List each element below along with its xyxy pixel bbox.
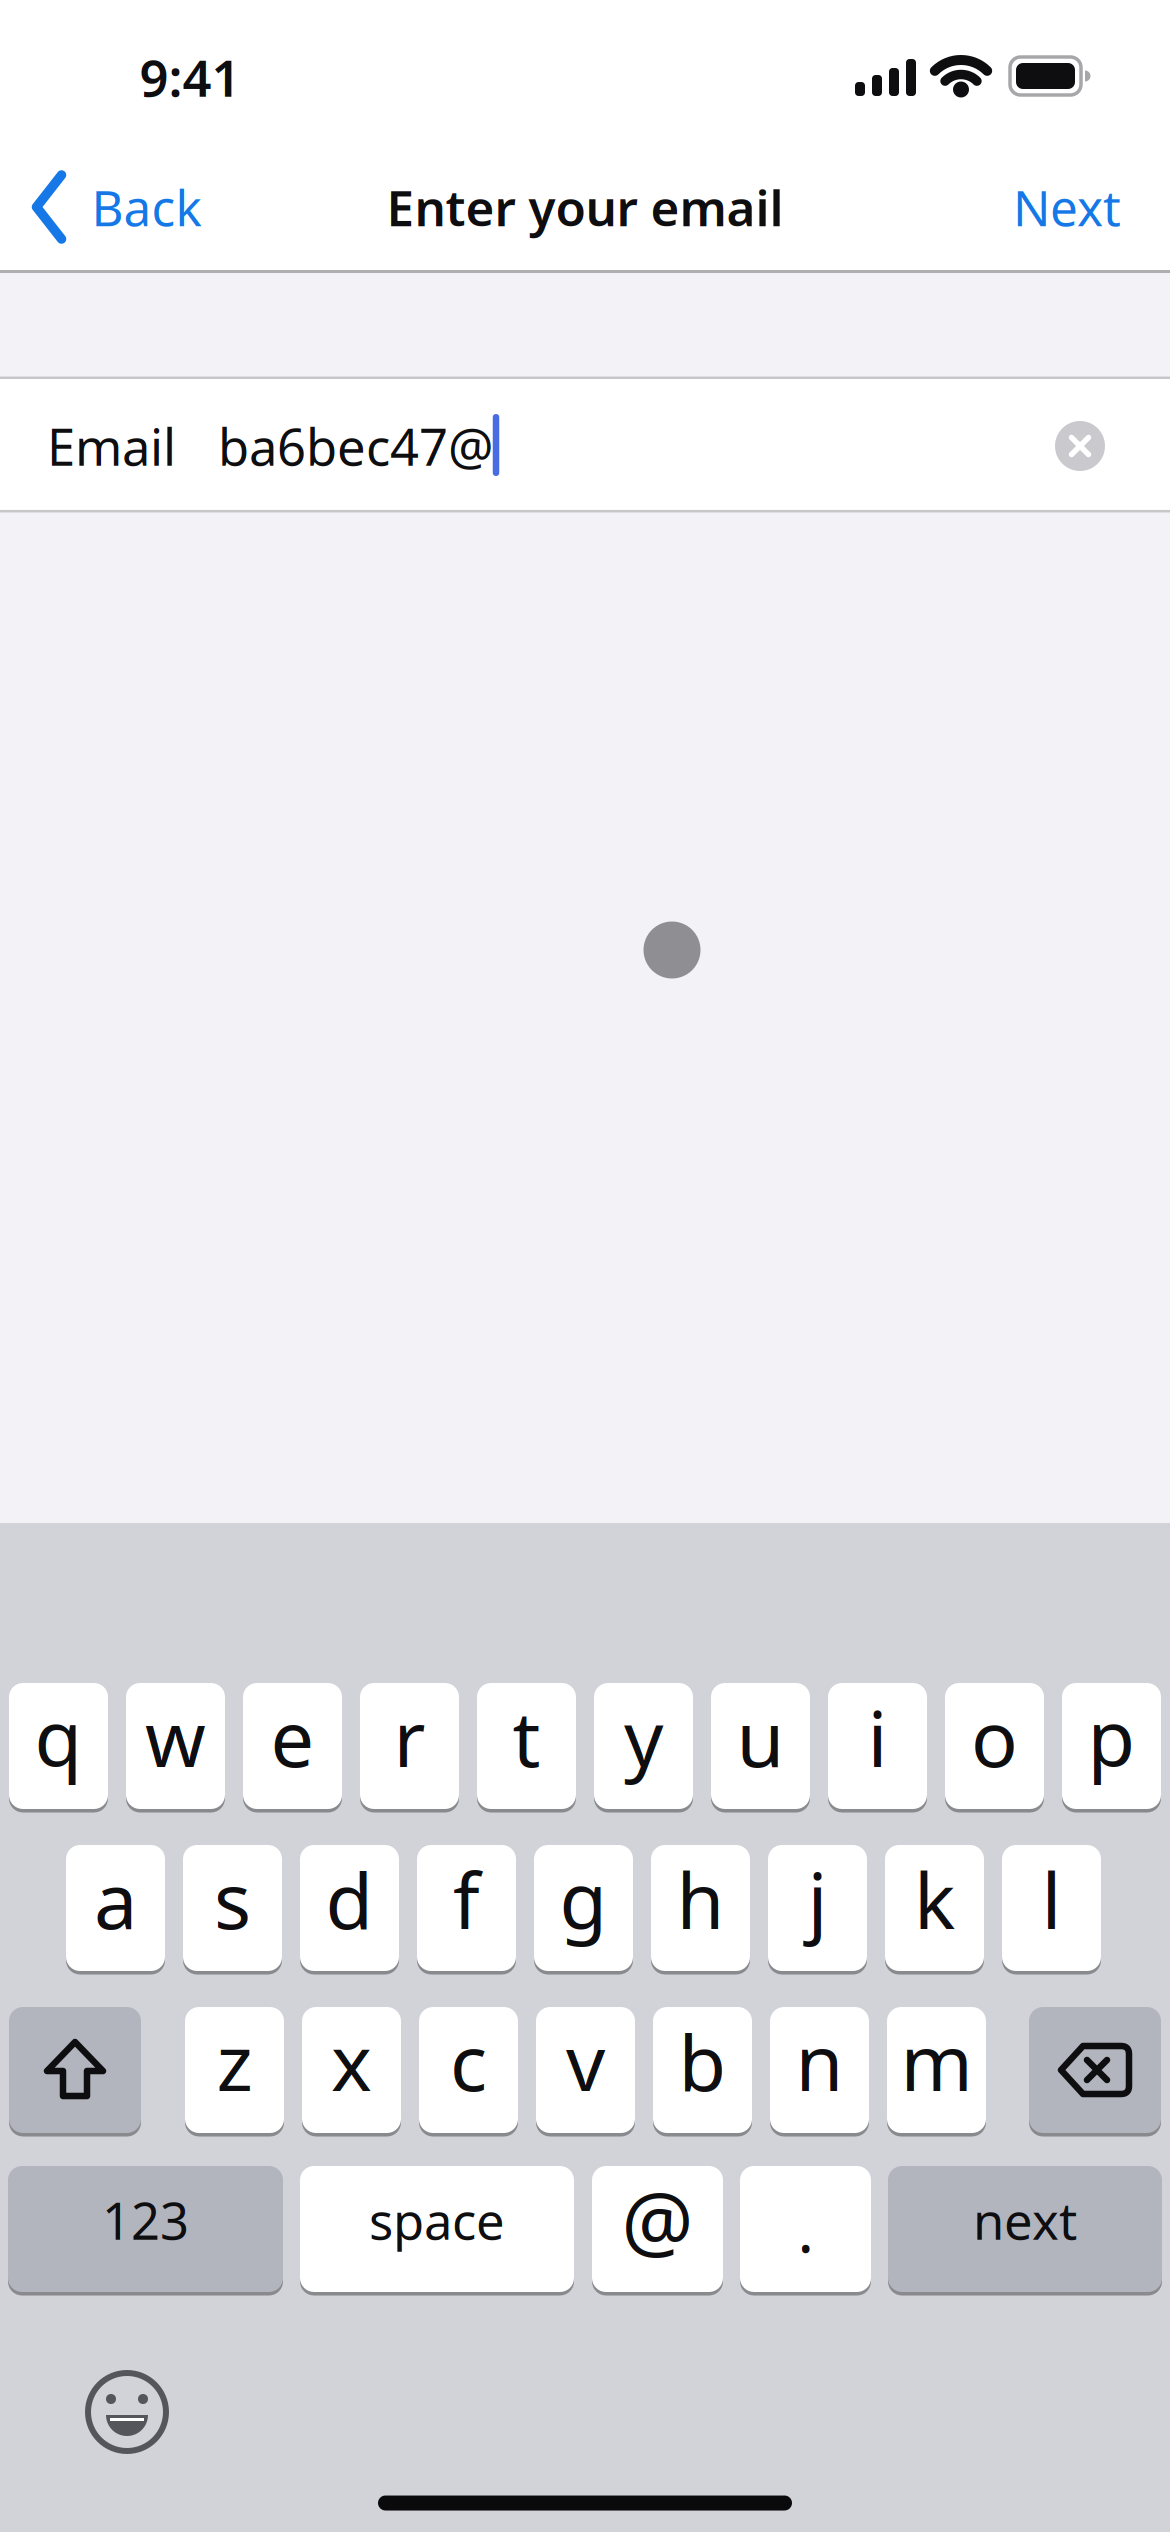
button[interactable]: Emoji — [87, 2372, 167, 2452]
staticText: ba6bec47@ — [218, 412, 494, 480]
staticText: p — [1087, 1686, 1135, 1788]
button[interactable]: w — [126, 1683, 225, 1809]
staticText: z — [216, 2010, 252, 2112]
button[interactable]: b — [653, 2007, 752, 2133]
button[interactable]: q — [9, 1683, 108, 1809]
button[interactable]: e — [243, 1683, 342, 1809]
button[interactable]: g — [534, 1845, 633, 1971]
button[interactable]: next — [888, 2166, 1162, 2292]
button[interactable]: n — [770, 2007, 869, 2133]
button[interactable]: Shift — [9, 2007, 141, 2133]
button[interactable]: l — [1002, 1845, 1101, 1971]
staticText: o — [971, 1686, 1018, 1788]
staticText: d — [325, 1848, 373, 1950]
staticText: i — [867, 1686, 887, 1788]
button[interactable]: Delete — [1029, 2007, 1161, 2133]
staticText: a — [94, 1848, 137, 1950]
button[interactable]: v — [536, 2007, 635, 2133]
staticText: Enter your email — [386, 174, 783, 240]
button[interactable]: s — [183, 1845, 282, 1971]
staticText: v — [566, 2010, 605, 2112]
button[interactable]: u — [711, 1683, 810, 1809]
button[interactable]: . — [740, 2166, 871, 2292]
button[interactable]: Clear text — [1055, 421, 1105, 471]
button[interactable]: Back — [32, 173, 201, 241]
button[interactable]: h — [651, 1845, 750, 1971]
staticText: Email — [47, 412, 176, 480]
staticText: 123 — [102, 2186, 189, 2254]
button[interactable]: x — [302, 2007, 401, 2133]
button[interactable]: r — [360, 1683, 459, 1809]
button[interactable]: Next — [987, 167, 1147, 247]
button[interactable]: f — [417, 1845, 516, 1971]
button[interactable]: o — [945, 1683, 1044, 1809]
staticText: t — [512, 1686, 540, 1788]
staticText: r — [393, 1686, 425, 1788]
button[interactable]: c — [419, 2007, 518, 2133]
staticText: m — [900, 2010, 972, 2112]
staticText: l — [1041, 1848, 1061, 1950]
button[interactable]: @ — [592, 2166, 723, 2292]
button[interactable]: Numbers — [8, 2166, 283, 2292]
staticText: n — [795, 2010, 843, 2112]
button[interactable]: space — [300, 2166, 574, 2292]
staticText: u — [736, 1686, 784, 1788]
staticText: 9:41 — [139, 43, 240, 111]
button[interactable]: i — [828, 1683, 927, 1809]
button[interactable]: a — [66, 1845, 165, 1971]
staticText: y — [624, 1686, 663, 1788]
staticText: e — [270, 1686, 314, 1788]
staticText: j — [807, 1848, 827, 1950]
button[interactable]: j — [768, 1845, 867, 1971]
staticText: c — [450, 2010, 487, 2112]
staticText: s — [214, 1848, 251, 1950]
button[interactable]: m — [887, 2007, 986, 2133]
staticText: k — [914, 1848, 955, 1950]
staticText: space — [369, 2186, 505, 2254]
staticText: w — [145, 1686, 206, 1788]
staticText: x — [331, 2010, 372, 2112]
staticText: @ — [621, 2167, 693, 2273]
staticText: next — [973, 2186, 1077, 2254]
button[interactable]: k — [885, 1845, 984, 1971]
staticText: b — [678, 2010, 726, 2112]
staticText: Back — [91, 174, 201, 240]
button[interactable]: y — [594, 1683, 693, 1809]
button[interactable]: d — [300, 1845, 399, 1971]
staticText: . — [797, 2188, 813, 2270]
button[interactable]: z — [185, 2007, 284, 2133]
button[interactable]: p — [1062, 1683, 1161, 1809]
staticText: f — [453, 1848, 480, 1950]
staticText: q — [34, 1686, 82, 1788]
staticText: g — [559, 1848, 607, 1950]
button[interactable]: t — [477, 1683, 576, 1809]
staticText: Next — [1013, 174, 1121, 240]
staticText: h — [676, 1848, 724, 1950]
